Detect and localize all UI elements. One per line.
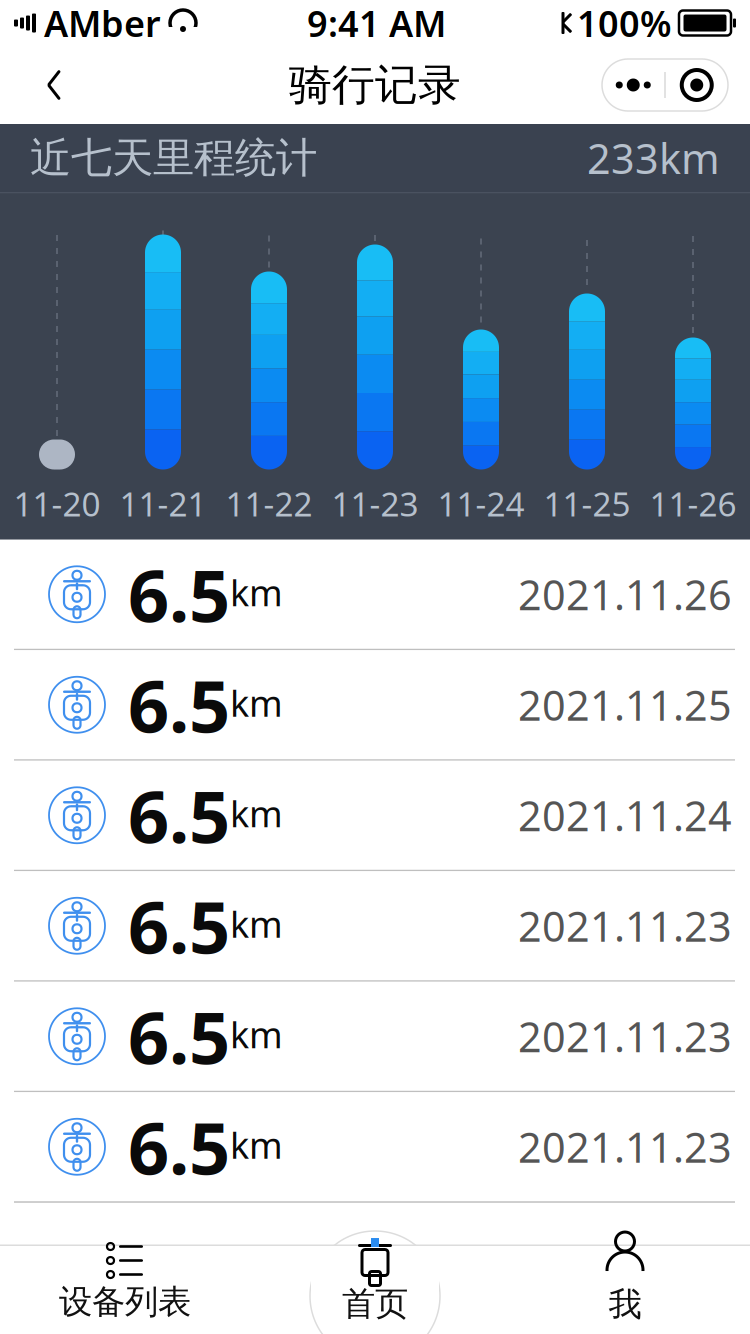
staticText: km <box>230 789 283 837</box>
staticText: 6.5 <box>128 546 230 642</box>
button[interactable]: 6.5 <box>0 871 750 982</box>
staticText: 2021.11.25 <box>518 677 732 732</box>
staticText: 6.5 <box>128 767 230 863</box>
staticText: AMber <box>44 0 161 47</box>
staticText: km <box>230 568 283 616</box>
button[interactable]: 6.5 <box>0 761 750 871</box>
staticText: km <box>230 900 283 948</box>
staticText: 9:41 AM <box>307 0 446 47</box>
staticText: 11-20 <box>13 481 100 526</box>
button[interactable]: 6.5 <box>0 982 750 1092</box>
button[interactable]: More options <box>602 59 728 111</box>
staticText: km <box>230 1121 283 1169</box>
staticText: km <box>230 1010 283 1058</box>
staticText: 11-26 <box>649 481 736 526</box>
button[interactable]: Back <box>22 53 86 117</box>
staticText: 骑行记录 <box>289 59 461 111</box>
staticText: 设备列表 <box>59 1281 191 1322</box>
staticText: km <box>230 679 283 727</box>
staticText: 2021.11.23 <box>518 1009 732 1064</box>
button[interactable]: 6.5 <box>0 540 750 650</box>
staticText: 100% <box>577 0 672 47</box>
staticText: 我 <box>608 1284 641 1325</box>
staticText: 2021.11.23 <box>518 898 732 953</box>
staticText: 2021.11.26 <box>518 567 732 622</box>
staticText: 6.5 <box>128 878 230 974</box>
staticText: 11-21 <box>119 481 206 526</box>
staticText: 11-23 <box>331 481 418 526</box>
staticText: 6.5 <box>128 988 230 1084</box>
button[interactable]: 设备列表 <box>0 1230 250 1334</box>
staticText: 6.5 <box>128 657 230 753</box>
button[interactable]: 我 <box>500 1230 750 1334</box>
staticText: 11-25 <box>543 481 630 526</box>
staticText: 233km <box>587 131 720 185</box>
staticText: 近七天里程统计 <box>30 133 317 183</box>
staticText: 首页 <box>342 1283 408 1324</box>
staticText: 11-22 <box>225 481 312 526</box>
staticText: 2021.11.24 <box>518 788 732 843</box>
staticText: 11-24 <box>437 481 524 526</box>
button[interactable]: 6.5 <box>0 1092 750 1203</box>
button[interactable]: 首页 <box>250 1230 500 1334</box>
staticText: 2021.11.23 <box>518 1119 732 1174</box>
staticText: 6.5 <box>128 1099 230 1195</box>
button[interactable]: 6.5 <box>0 650 750 761</box>
